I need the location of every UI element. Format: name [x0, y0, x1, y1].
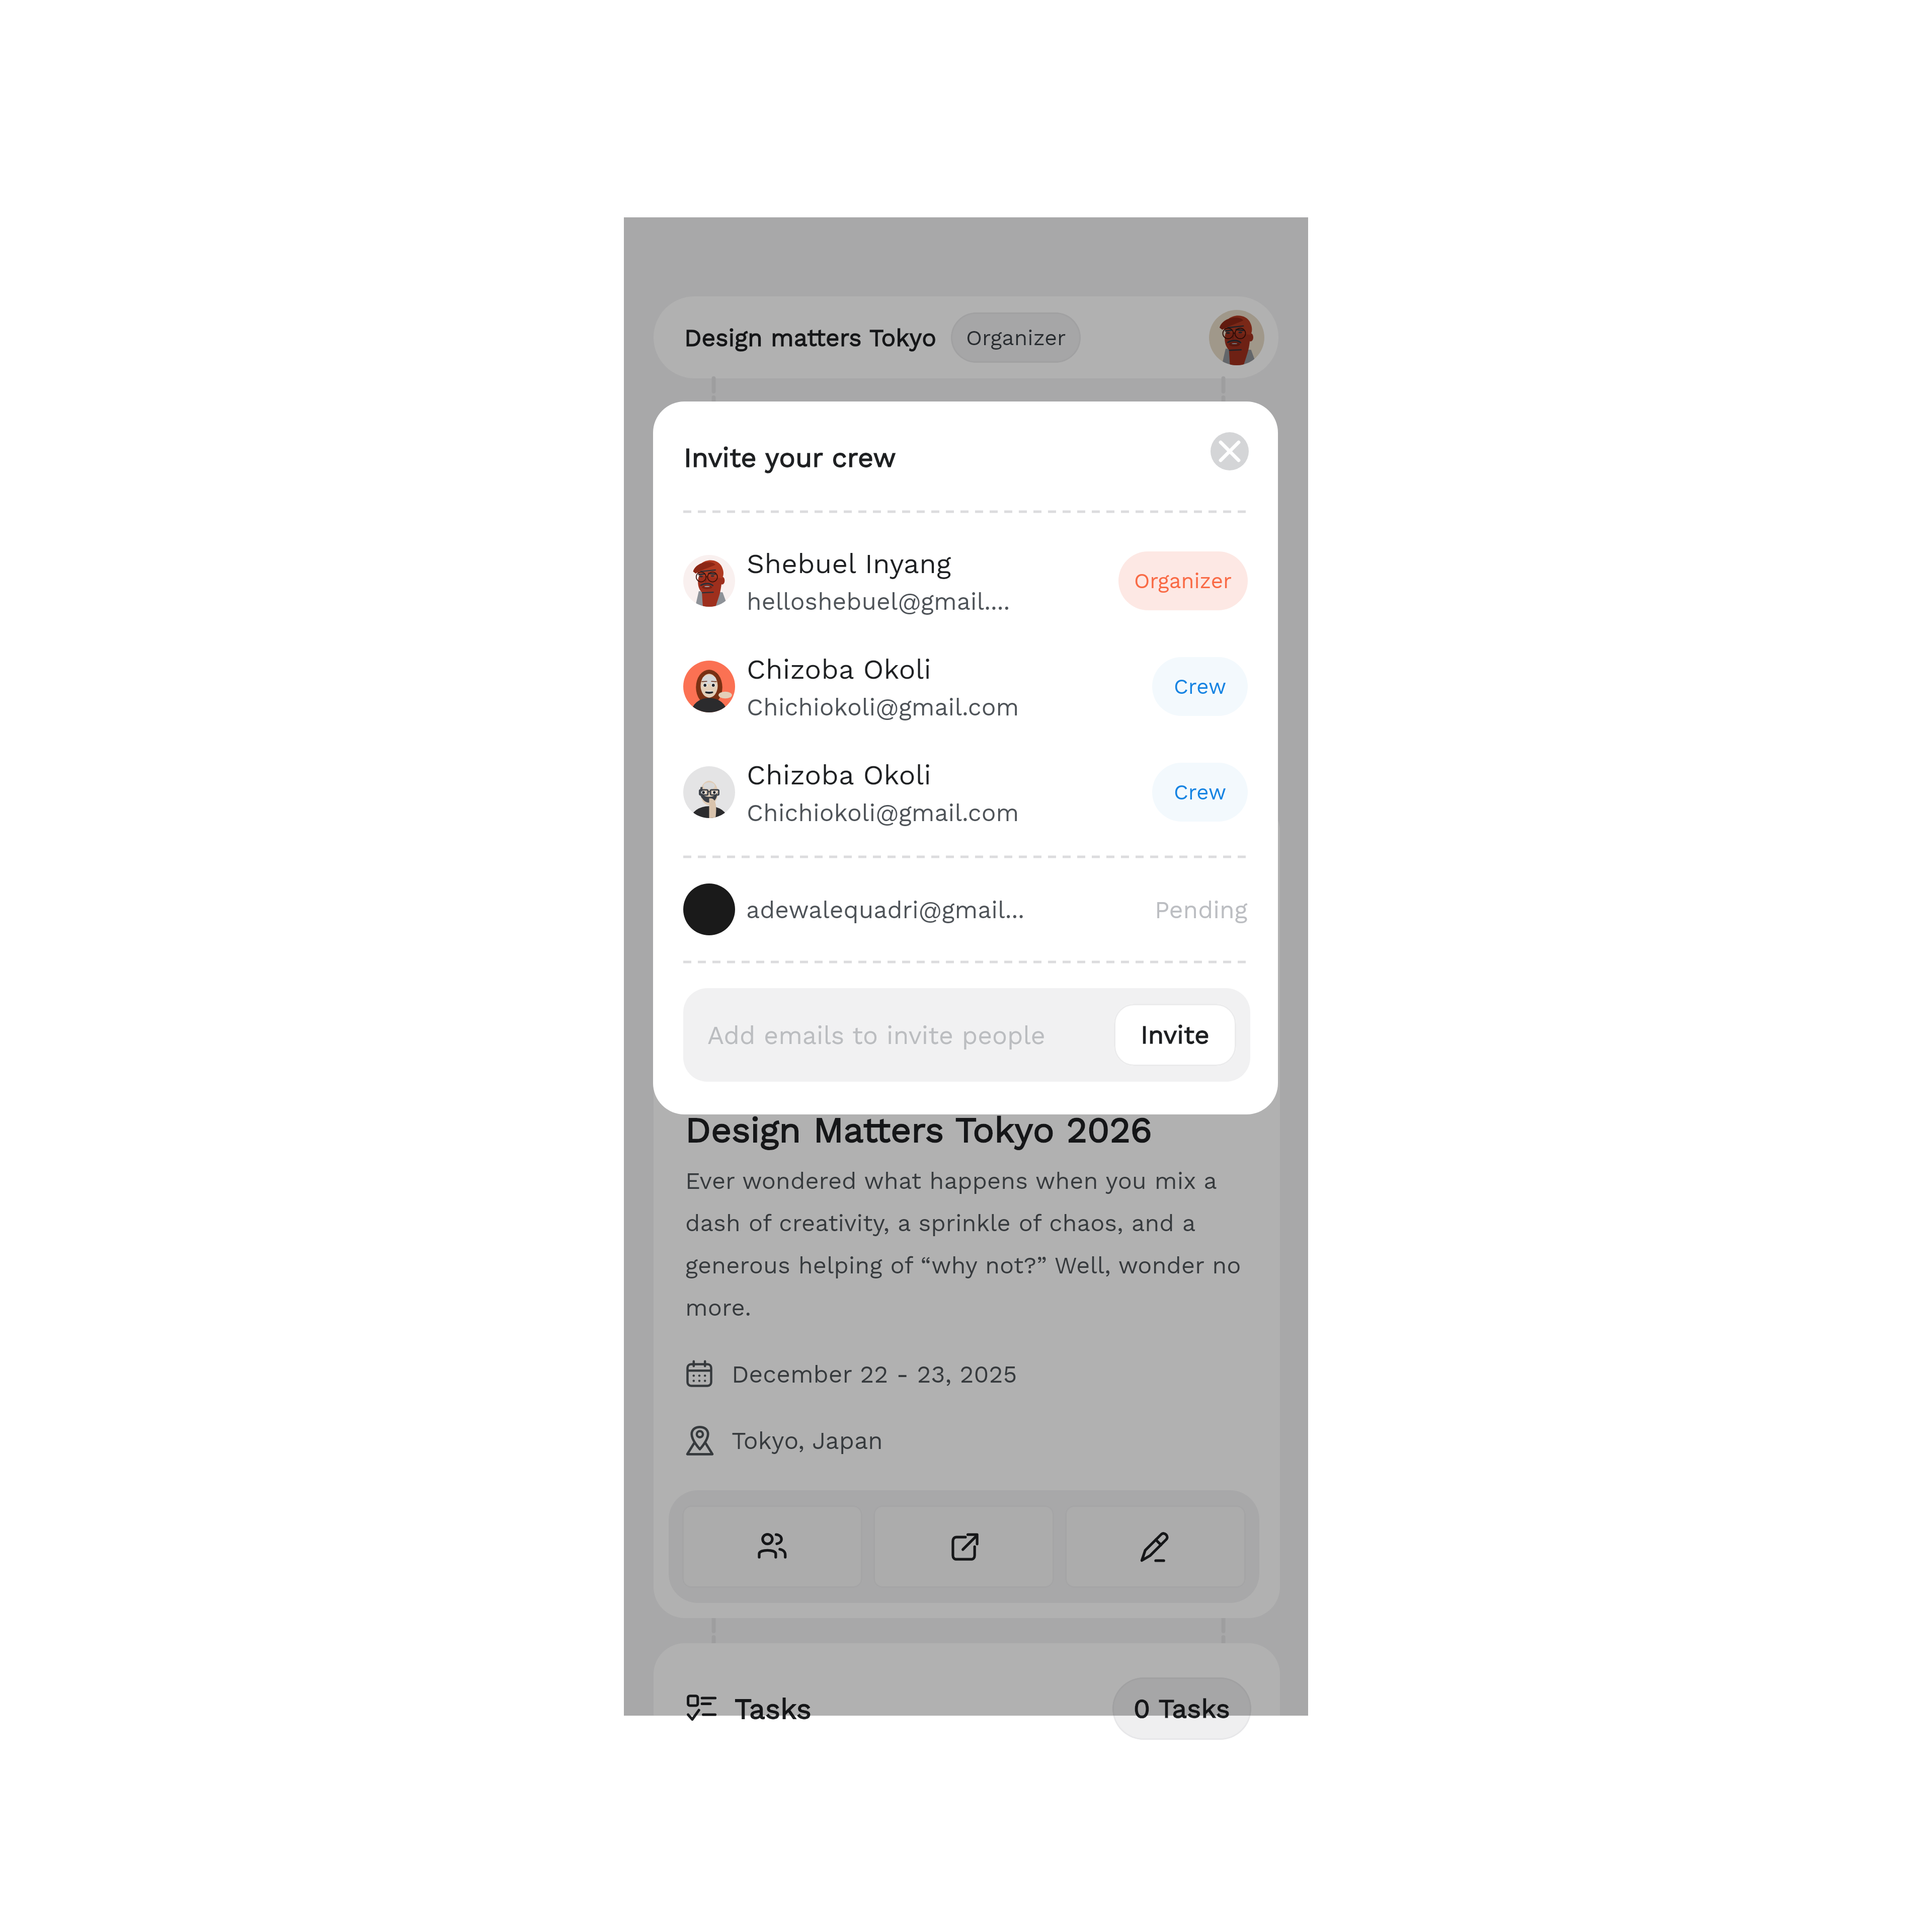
- button[interactable]: Crew: [1152, 763, 1248, 822]
- staticText: Organizer: [966, 325, 1066, 350]
- button[interactable]: adewalequadri@gmail...: [683, 858, 1248, 961]
- staticText: Tasks: [735, 1692, 812, 1726]
- staticText: Invite your crew: [684, 442, 896, 473]
- staticText: Crew: [1174, 780, 1227, 804]
- staticText: December 22 - 23, 2025: [732, 1360, 1017, 1388]
- staticText: Chizoba Okoli: [747, 653, 931, 686]
- button[interactable]: Organizer: [1118, 551, 1248, 610]
- staticText: Invite: [1141, 1020, 1210, 1050]
- staticText: Design Matters Tokyo 2026: [685, 1109, 1152, 1151]
- button[interactable]: Chizoba Okoli: [683, 633, 1248, 739]
- staticText: Chichiokoli@gmail.com: [747, 798, 1019, 827]
- button[interactable]: Shebuel Inyang: [683, 528, 1248, 633]
- staticText: Design matters Tokyo: [684, 324, 937, 352]
- button[interactable]: Members: [682, 1505, 862, 1588]
- button[interactable]: Design matters Tokyo: [654, 296, 1278, 378]
- staticText: Chichiokoli@gmail.com: [747, 693, 1019, 721]
- staticText: Organizer: [1134, 569, 1232, 593]
- button[interactable]: Chizoba Okoli: [683, 739, 1248, 845]
- staticText: Shebuel Inyang: [747, 547, 951, 580]
- staticText: helloshebuel@gmail....: [747, 587, 1010, 615]
- staticText: Chizoba Okoli: [747, 759, 931, 791]
- button[interactable]: Edit: [1065, 1505, 1246, 1588]
- staticText: Pending: [1155, 896, 1248, 924]
- staticText: Crew: [1174, 674, 1227, 699]
- staticText: adewalequadri@gmail...: [746, 896, 1025, 924]
- staticText: Add emails to invite people: [707, 1020, 1045, 1050]
- button[interactable]: Tasks: [654, 1643, 1280, 1774]
- button[interactable]: Invite: [1114, 1004, 1236, 1066]
- button[interactable]: Crew: [1152, 657, 1248, 716]
- staticText: Tokyo, Japan: [732, 1426, 883, 1455]
- staticText: Ever wondered what happens when you mix …: [685, 1167, 1244, 1321]
- button[interactable]: Close: [1211, 432, 1249, 470]
- button[interactable]: Share: [873, 1505, 1054, 1588]
- staticText: 0 Tasks: [1134, 1693, 1230, 1724]
